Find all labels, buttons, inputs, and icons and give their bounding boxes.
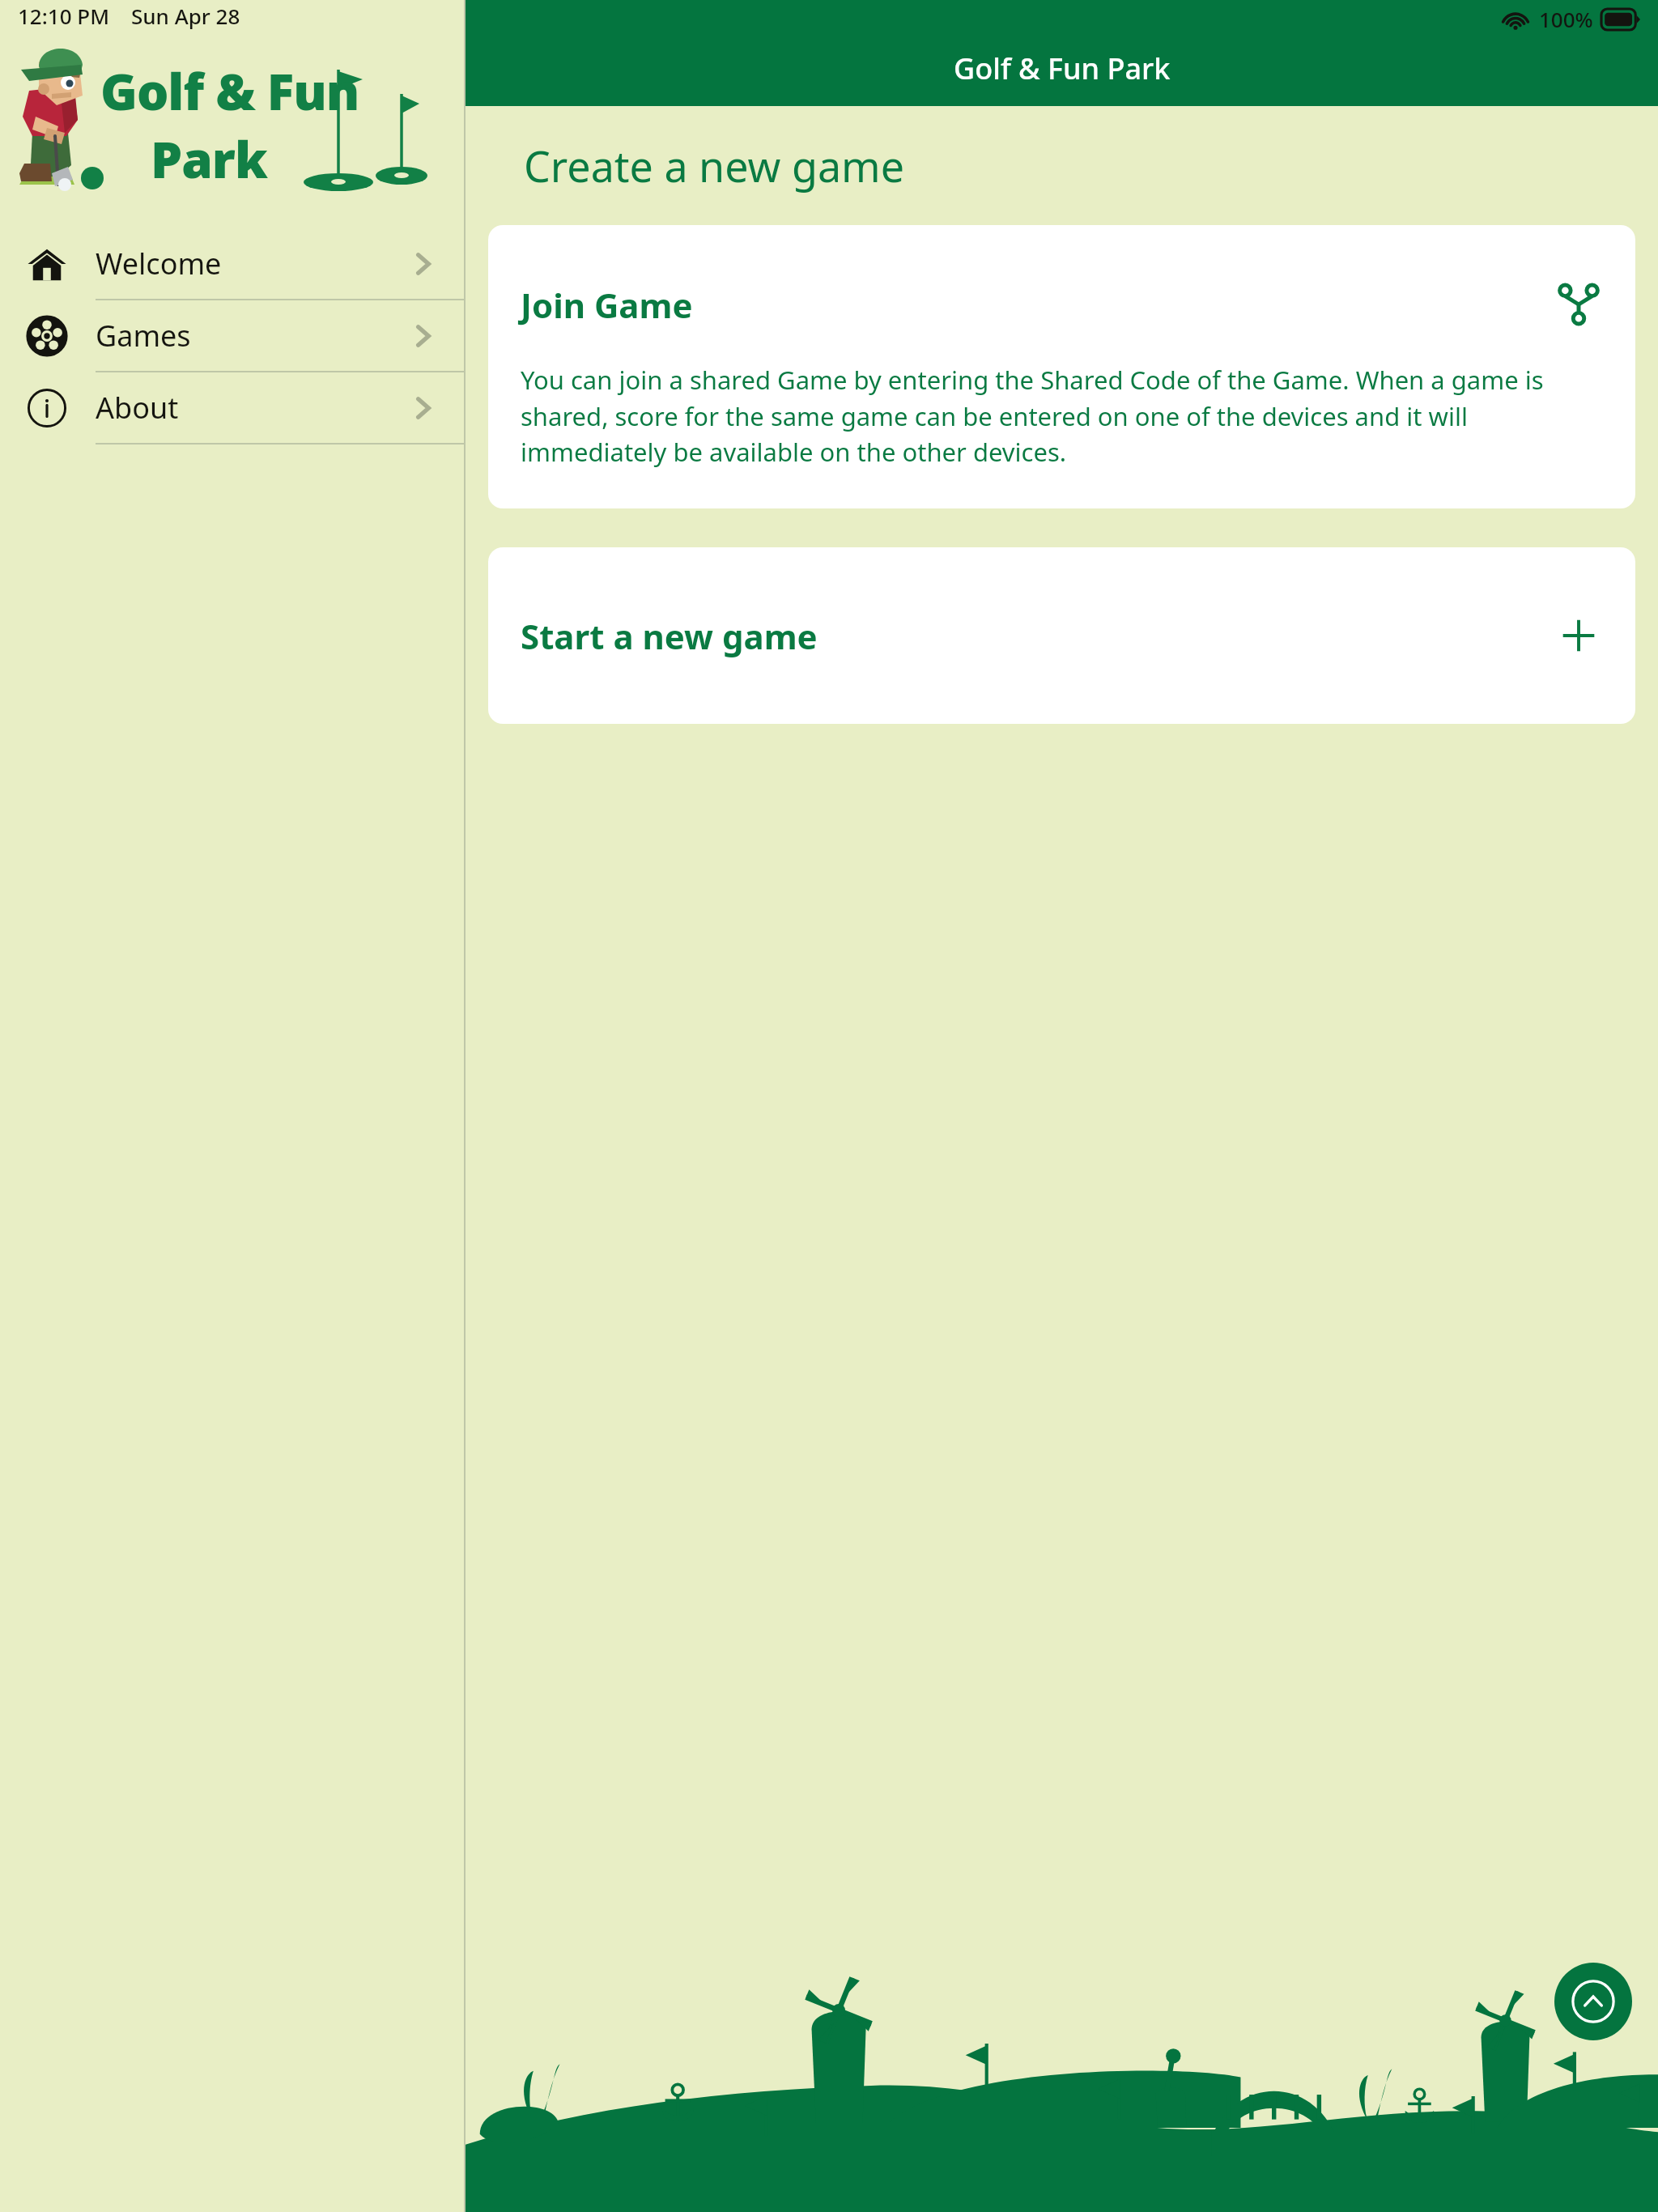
button[interactable]: Scroll to top: [1554, 1963, 1632, 2040]
staticText: Start a new game: [521, 613, 818, 659]
button[interactable]: Start a new game: [488, 547, 1635, 724]
button[interactable]: Share game: [1554, 280, 1603, 329]
staticText: You can join a shared Game by entering t…: [521, 363, 1603, 469]
staticText: Golf & Fun: [100, 57, 359, 125]
button[interactable]: Games: [0, 300, 464, 371]
button[interactable]: Add new game: [1554, 611, 1603, 660]
staticText: 12:10 PM: [18, 2, 110, 30]
button[interactable]: About: [0, 372, 464, 443]
staticText: Golf & Fun Park: [954, 49, 1171, 88]
staticText: Games: [96, 316, 191, 355]
staticText: Welcome: [96, 244, 222, 283]
staticText: 100%: [1539, 5, 1593, 33]
staticText: Create a new game: [524, 137, 905, 194]
button[interactable]: Join Game: [488, 225, 1635, 508]
button[interactable]: Welcome: [0, 228, 464, 299]
staticText: About: [96, 388, 179, 428]
staticText: Join Game: [521, 282, 693, 328]
staticText: Park: [151, 125, 267, 193]
staticText: Sun Apr 28: [131, 2, 240, 30]
